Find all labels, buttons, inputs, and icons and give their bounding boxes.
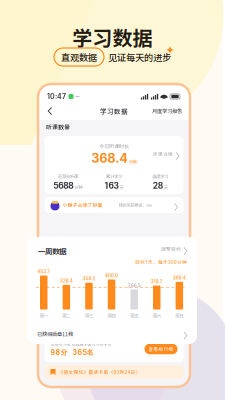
button[interactable]: 返回 xyxy=(44,104,56,118)
staticText: 《语文强化》晨读卡第〈03月24日〉 xyxy=(58,369,140,375)
staticText: 近30天听课 xyxy=(58,173,78,180)
staticText: 天 xyxy=(119,184,123,190)
staticText: 328.4 xyxy=(60,278,73,284)
staticText: 直观数据 xyxy=(61,50,97,63)
button[interactable]: 小猴子占领了封面 xyxy=(44,194,183,213)
staticText: 已获得勋章11枚 xyxy=(37,330,73,338)
staticText: 周一 xyxy=(40,312,48,319)
staticText: 月度学习报告 xyxy=(152,107,182,115)
staticText: 学习数据 xyxy=(72,22,152,51)
button[interactable]: 查看排行榜 xyxy=(144,344,177,354)
staticText: 小猴子占领了封面 xyxy=(62,201,102,208)
staticText: 周二 xyxy=(62,312,70,319)
staticText: 本周学习榜 已超越全国91%的学员 xyxy=(50,341,111,347)
button[interactable]: 已获得勋章11枚 xyxy=(27,326,197,342)
staticText: 周五 xyxy=(130,312,138,319)
staticText: 调整目标 xyxy=(161,245,181,252)
staticText: 周六 xyxy=(153,312,161,319)
staticText: 365名 xyxy=(72,348,93,357)
staticText: 连续学习 xyxy=(152,173,168,180)
button[interactable]: 听课详情 xyxy=(150,150,178,158)
staticText: 目标7天、每天300分钟 xyxy=(135,258,187,265)
staticText: 163 xyxy=(104,181,118,191)
staticText: 今日听课时长 xyxy=(99,142,129,150)
staticText: 分钟 xyxy=(129,158,137,165)
staticText: 98分 xyxy=(50,348,67,357)
staticText: 一周数据 xyxy=(38,246,66,256)
staticText: 358.2 xyxy=(82,276,95,281)
staticText: 10:47 xyxy=(47,92,66,101)
staticText: 453.7 xyxy=(37,269,50,274)
staticText: 听课详情 xyxy=(153,151,173,157)
staticText: 分钟 xyxy=(74,184,82,190)
staticText: 28 xyxy=(153,181,163,191)
staticText: 学习数据 xyxy=(100,106,128,116)
staticText: 天 xyxy=(164,184,168,190)
staticText: 周四 xyxy=(108,312,116,319)
staticText: 400.0 xyxy=(105,273,118,278)
button[interactable]: 月度学习报告 xyxy=(150,105,184,117)
staticText: 听课数量 xyxy=(46,123,70,131)
button[interactable]: 调整目标 xyxy=(153,245,187,253)
staticText: 5688 xyxy=(53,181,73,191)
staticText: 368.4 xyxy=(173,275,186,281)
staticText: 266.5 xyxy=(128,283,141,288)
staticText: 累计学习 xyxy=(106,173,122,180)
staticText: 我的当前排名：0m xyxy=(118,202,152,208)
staticText: 见证每天的进步 xyxy=(108,50,171,64)
staticText: 周三 xyxy=(85,312,93,319)
staticText: 查看排行榜 xyxy=(148,346,173,352)
staticText: 周日 xyxy=(175,312,183,319)
staticText: 319.7 xyxy=(151,279,163,284)
staticText: 368.4 xyxy=(91,151,128,166)
